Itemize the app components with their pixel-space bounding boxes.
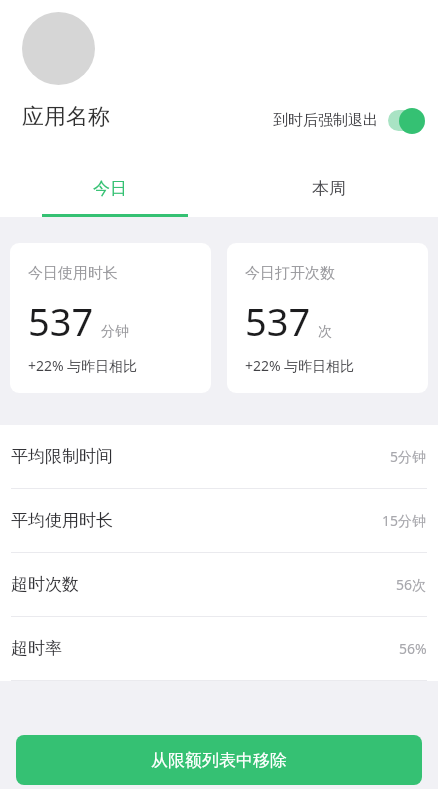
staticText: 超时次数 <box>11 574 396 595</box>
staticText: 分钟 <box>101 323 129 341</box>
staticText: 56% <box>399 639 427 658</box>
button[interactable]: 从限额列表中移除 <box>16 735 422 785</box>
staticText: 本周 <box>312 178 346 199</box>
staticText: 今日使用时长 <box>28 264 118 283</box>
staticText: 从限额列表中移除 <box>151 750 287 771</box>
staticText: 15分钟 <box>382 511 427 530</box>
button[interactable]: 超时率 <box>0 617 438 680</box>
button[interactable]: 到时后强制退出 <box>273 106 425 135</box>
staticText: 次 <box>318 323 332 341</box>
staticText: 5分钟 <box>390 447 427 466</box>
button[interactable]: 今日打开次数 <box>227 243 428 393</box>
button[interactable]: 平均使用时长 <box>0 489 438 552</box>
button[interactable]: App icon <box>22 12 95 85</box>
staticText: 应用名称 <box>22 103 110 131</box>
button[interactable]: 本周 <box>219 159 438 217</box>
staticText: 平均使用时长 <box>11 510 382 531</box>
staticText: 到时后强制退出 <box>273 111 378 130</box>
staticText: +22% 与昨日相比 <box>245 356 355 375</box>
staticText: 今日打开次数 <box>245 264 335 283</box>
staticText: +22% 与昨日相比 <box>28 356 138 375</box>
staticText: 537 <box>245 295 311 347</box>
button[interactable]: 今日 <box>0 159 219 217</box>
button[interactable]: 平均限制时间 <box>0 425 438 488</box>
staticText: 平均限制时间 <box>11 446 390 467</box>
button[interactable]: 今日使用时长 <box>10 243 211 393</box>
staticText: 56次 <box>396 575 427 594</box>
staticText: 今日 <box>93 178 127 199</box>
button[interactable]: 超时次数 <box>0 553 438 616</box>
staticText: 537 <box>28 295 94 347</box>
staticText: 超时率 <box>11 638 399 659</box>
